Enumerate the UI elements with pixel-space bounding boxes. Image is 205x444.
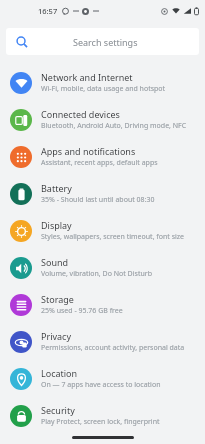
staticText: Connected devices — [41, 108, 120, 120]
staticText: Storage — [41, 293, 74, 305]
button[interactable]: Network and Internet — [0, 64, 205, 101]
button[interactable]: Privacy — [0, 323, 205, 360]
staticText: On — 7 apps have access to location — [41, 380, 161, 390]
button[interactable]: Sound — [0, 249, 205, 286]
staticText: Permissions, account activity, personal … — [41, 343, 185, 353]
staticText: Search settings — [73, 36, 138, 48]
staticText: Bluetooth, Android Auto, Driving mode, N… — [41, 121, 187, 131]
staticText: 16:57 — [38, 6, 58, 16]
staticText: Assistant, recent apps, default apps — [41, 158, 158, 168]
staticText: Wi-Fi, mobile, data usage and hotspot — [41, 84, 166, 94]
other: Search — [16, 36, 28, 48]
staticText: Apps and notifications — [41, 145, 136, 157]
button[interactable]: Location — [0, 360, 205, 397]
staticText: Security — [41, 404, 75, 416]
staticText: Volume, vibration, Do Not Disturb — [41, 269, 152, 279]
staticText: Location — [41, 367, 78, 379]
button[interactable]: Search — [6, 28, 199, 55]
staticText: Battery — [41, 182, 72, 194]
button[interactable]: Battery — [0, 175, 205, 212]
button[interactable]: Display — [0, 212, 205, 249]
staticText: Sound — [41, 256, 69, 268]
staticText: 35% - Should last until about 08:30 — [41, 195, 155, 205]
staticText: Display — [41, 219, 72, 231]
staticText: 25% used - 95.76 GB free — [41, 306, 123, 316]
button[interactable]: Connected devices — [0, 101, 205, 138]
button[interactable]: Apps and notifications — [0, 138, 205, 175]
staticText: Play Protect, screen lock, fingerprint — [41, 417, 160, 427]
staticText: Styles, wallpapers, screen timeout, font… — [41, 232, 185, 242]
button[interactable]: Security — [0, 397, 205, 434]
staticText: Network and Internet — [41, 71, 133, 83]
staticText: Privacy — [41, 330, 72, 342]
button[interactable]: Storage — [0, 286, 205, 323]
